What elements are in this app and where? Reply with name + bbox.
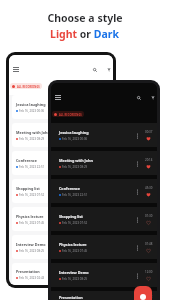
button[interactable]: Filter <box>104 65 113 74</box>
staticText: Presentation <box>16 269 40 274</box>
button[interactable]: Conference <box>12 151 110 175</box>
staticText: 12:00 <box>145 270 153 274</box>
staticText: Meeting with John <box>59 158 93 163</box>
staticText: Feb 16, 2023 07:45 <box>19 221 45 225</box>
staticText: Feb 16, 2023 07:52 <box>62 221 88 225</box>
staticText: Feb 16, 2023 07:45 <box>62 249 88 253</box>
staticText: 01:30 <box>145 214 153 218</box>
staticText: Meeting with John <box>16 130 50 135</box>
button[interactable]: More options <box>134 272 141 279</box>
staticText: Jessica laughing <box>16 102 46 107</box>
staticText: Feb 16, 2023 00:06 <box>19 109 45 113</box>
button[interactable]: More options <box>134 160 141 167</box>
button[interactable]: ALL RECORDINGS <box>10 83 42 89</box>
button[interactable]: Interview Demo <box>51 263 157 287</box>
staticText: Feb 16, 2023 08:29 <box>19 137 45 141</box>
button[interactable]: Filter <box>148 93 157 102</box>
button[interactable]: Shopping list <box>12 179 110 203</box>
staticText: Conference <box>59 186 80 191</box>
button[interactable]: Presentation <box>51 291 157 300</box>
staticText: Conference <box>16 158 37 163</box>
staticText: Feb 16, 2023 22:51 <box>19 165 45 169</box>
staticText: Feb 16, 2023 08:25 <box>62 277 88 281</box>
staticText: Feb 16, 2023 22:51 <box>62 193 88 197</box>
button[interactable]: Physics lecture <box>12 207 110 231</box>
button[interactable]: Meeting with John <box>12 123 110 147</box>
button[interactable]: Jessica laughing <box>51 123 157 147</box>
staticText: Light or Dark <box>50 27 119 41</box>
staticText: Shopping list <box>59 214 83 219</box>
staticText: 08:12 <box>145 295 153 299</box>
staticText: Interview Demo <box>16 242 46 247</box>
button[interactable]: Record <box>134 286 152 300</box>
staticText: 00:37 <box>145 130 153 134</box>
staticText: Choose a style <box>47 11 123 25</box>
button[interactable]: Search <box>90 65 99 74</box>
staticText: Feb 16, 2023 02:43 <box>19 276 45 280</box>
staticText: Physics lecture <box>59 242 87 247</box>
staticText: Feb 16, 2023 07:52 <box>19 193 45 197</box>
staticText: Physics lecture <box>16 214 44 219</box>
staticText: 45:30 <box>145 186 153 190</box>
button[interactable]: More options <box>134 132 141 139</box>
button[interactable]: ALL RECORDINGS <box>52 111 84 117</box>
button[interactable]: More options <box>134 188 141 195</box>
button[interactable]: Conference <box>51 179 157 203</box>
button[interactable]: Search <box>134 93 143 102</box>
staticText: ALL RECORDINGS <box>17 85 40 88</box>
button[interactable]: Menu <box>11 64 21 74</box>
staticText: Feb 16, 2023 00:06 <box>62 137 88 141</box>
staticText: Interview Demo <box>59 270 89 275</box>
button[interactable]: Shopping list <box>51 207 157 231</box>
staticText: Feb 16, 2023 08:25 <box>19 249 45 253</box>
staticText: Shopping list <box>16 186 40 191</box>
staticText: ALL RECORDINGS <box>59 113 82 116</box>
button[interactable]: More options <box>134 244 141 251</box>
button[interactable]: Presentation <box>12 263 110 285</box>
button[interactable]: More options <box>134 297 141 300</box>
staticText: 20:14 <box>145 158 153 162</box>
button[interactable]: Interview Demo <box>12 235 110 259</box>
staticText: Presentation <box>59 295 83 300</box>
button[interactable]: Meeting with John <box>51 151 157 175</box>
button[interactable]: Menu <box>53 92 63 102</box>
staticText: Jessica laughing <box>59 130 89 135</box>
button[interactable]: Jessica laughing <box>12 95 110 119</box>
button[interactable]: More options <box>134 216 141 223</box>
staticText: 01:48 <box>145 242 153 246</box>
button[interactable]: Physics lecture <box>51 235 157 259</box>
staticText: Feb 16, 2023 08:29 <box>62 165 88 169</box>
